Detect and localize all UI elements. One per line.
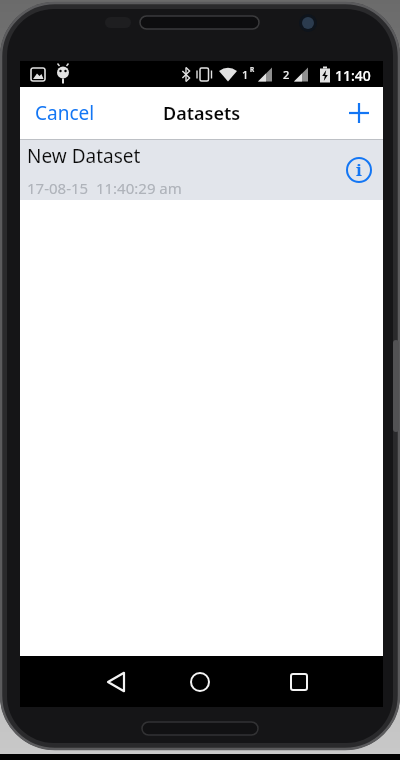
button[interactable]: i (335, 139, 383, 200)
staticText: 11:40 (335, 66, 371, 85)
staticText: i (356, 158, 362, 181)
staticText: 1 (242, 67, 249, 82)
staticText: R (250, 65, 255, 74)
button[interactable] (335, 87, 383, 139)
staticText: 17-08-15 11:40:29 am (27, 178, 182, 198)
button[interactable] (176, 656, 224, 707)
button[interactable] (93, 656, 141, 707)
staticText: 2 (283, 67, 290, 82)
staticText: New Dataset (27, 143, 141, 169)
button[interactable] (275, 656, 323, 707)
staticText: Cancel (35, 100, 95, 126)
button[interactable]: New Dataset (20, 139, 383, 200)
button[interactable]: Cancel (20, 87, 110, 139)
staticText: Datasets (163, 101, 241, 126)
